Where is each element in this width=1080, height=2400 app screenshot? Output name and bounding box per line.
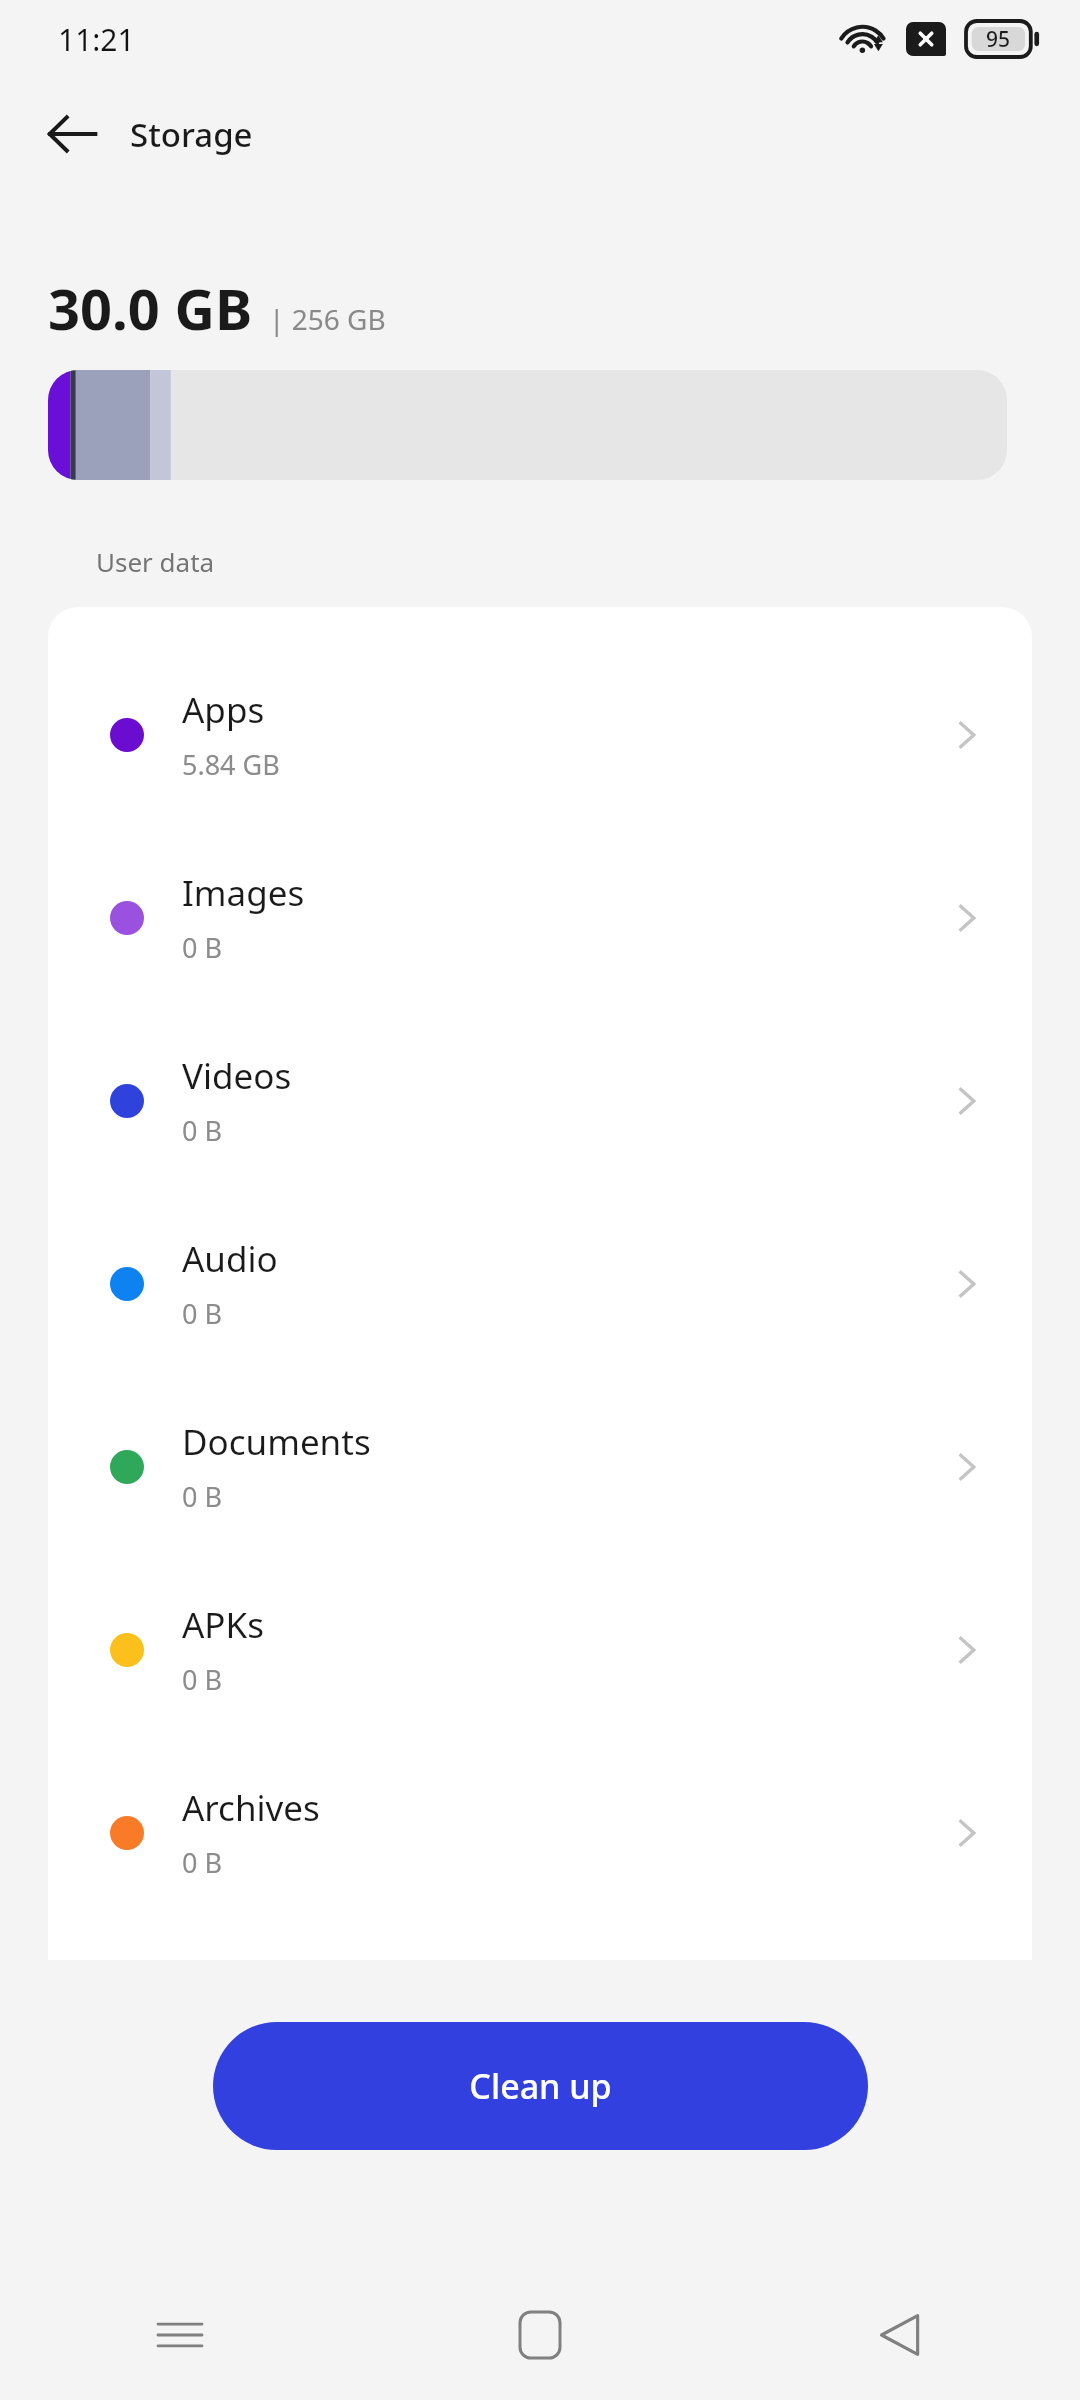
staticText: Storage xyxy=(130,112,253,157)
staticText: | 256 GB xyxy=(269,300,386,338)
button[interactable]: Home xyxy=(360,2270,720,2400)
button[interactable]: Back xyxy=(40,102,104,166)
staticText: Images xyxy=(182,869,305,917)
staticText: 95 xyxy=(986,25,1011,54)
button[interactable]: Clean up xyxy=(213,2022,868,2150)
staticText: User data xyxy=(96,544,215,579)
button[interactable]: Apps xyxy=(48,643,1032,826)
button[interactable]: Videos xyxy=(48,1009,1032,1192)
staticText: 0 B xyxy=(182,1661,223,1698)
button[interactable]: Back xyxy=(720,2270,1080,2400)
staticText: 0 B xyxy=(182,1112,223,1149)
staticText: 5.84 GB xyxy=(182,746,280,783)
button[interactable]: Recent apps xyxy=(0,2270,360,2400)
staticText: Documents xyxy=(182,1418,371,1466)
staticText: Archives xyxy=(182,1784,320,1832)
staticText: Clean up xyxy=(469,2063,612,2109)
button[interactable]: Audio xyxy=(48,1192,1032,1375)
staticText: 0 B xyxy=(182,1844,223,1881)
staticText: Videos xyxy=(182,1052,292,1100)
button[interactable]: Archives xyxy=(48,1741,1032,1924)
button[interactable]: APKs xyxy=(48,1558,1032,1741)
staticText: 0 B xyxy=(182,1295,223,1332)
staticText: 11:21 xyxy=(58,19,135,60)
staticText: Apps xyxy=(182,686,265,734)
staticText: 0 B xyxy=(182,1478,223,1515)
staticText: APKs xyxy=(182,1601,264,1649)
button[interactable]: Images xyxy=(48,826,1032,1009)
staticText: 30.0 GB xyxy=(48,270,253,346)
staticText: 0 B xyxy=(182,929,223,966)
button[interactable]: Documents xyxy=(48,1375,1032,1558)
staticText: Audio xyxy=(182,1235,278,1283)
